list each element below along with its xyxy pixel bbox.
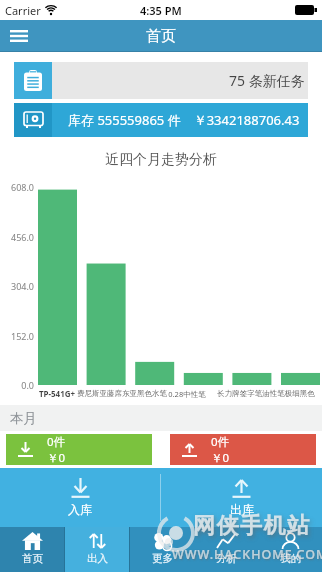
staticText: 首页 xyxy=(146,27,176,46)
button[interactable]: 库存 555559865 件 ￥3342188706.43 xyxy=(14,103,308,137)
button[interactable]: 出库 xyxy=(161,468,322,527)
staticText: Carrier xyxy=(5,3,41,18)
staticText: ￥0 xyxy=(211,450,230,465)
staticText: 费尼斯亚藤席东亚黑色水笔 xyxy=(67,389,177,398)
staticText: 网侠手机站 xyxy=(193,512,311,540)
staticText: 本月 xyxy=(10,410,37,427)
button[interactable]: 我的 xyxy=(258,527,322,572)
button[interactable]: 更多 xyxy=(130,527,194,572)
staticText: 首页 xyxy=(22,552,43,565)
staticText: 0.0 xyxy=(0,379,34,391)
button[interactable]: 0件 xyxy=(6,434,152,465)
button[interactable]: 分析 xyxy=(194,527,258,572)
staticText: 4:35 PM xyxy=(140,3,182,18)
staticText: 更多 xyxy=(152,552,173,565)
staticText: 608.0 xyxy=(0,181,34,193)
staticText: 0件 xyxy=(211,434,230,450)
button[interactable]: 75 条新任务 xyxy=(14,62,308,99)
staticText: 152.0 xyxy=(0,330,34,342)
staticText: 304.0 xyxy=(0,280,34,292)
staticText: 库存 555559865 件 ￥3342188706.43 xyxy=(68,111,300,129)
staticText: 0.28中性笔 xyxy=(132,389,242,399)
staticText: 75 条新任务 xyxy=(229,71,305,90)
staticText: WWW.HACKHOME.COM xyxy=(172,546,322,563)
staticText: 分析 xyxy=(216,552,237,565)
button[interactable]: 出入 xyxy=(65,527,129,572)
staticText: 我的 xyxy=(280,552,301,565)
button[interactable]: 0件 xyxy=(170,434,316,465)
staticText: TP-541G+ xyxy=(2,388,112,399)
staticText: ￥0 xyxy=(47,450,66,465)
staticText: 456.0 xyxy=(0,231,34,243)
button[interactable]: 首页 xyxy=(0,527,64,572)
staticText: 出入 xyxy=(87,552,108,565)
button[interactable] xyxy=(10,30,28,42)
staticText: 0件 xyxy=(47,434,66,450)
staticText: 出库 xyxy=(230,502,254,517)
staticText: 入库 xyxy=(68,502,92,517)
button[interactable]: 入库 xyxy=(0,468,160,527)
staticText: 近四个月走势分析 xyxy=(105,151,217,169)
staticText: 长力牌签字笔油性笔极细黑色 xyxy=(211,389,321,398)
